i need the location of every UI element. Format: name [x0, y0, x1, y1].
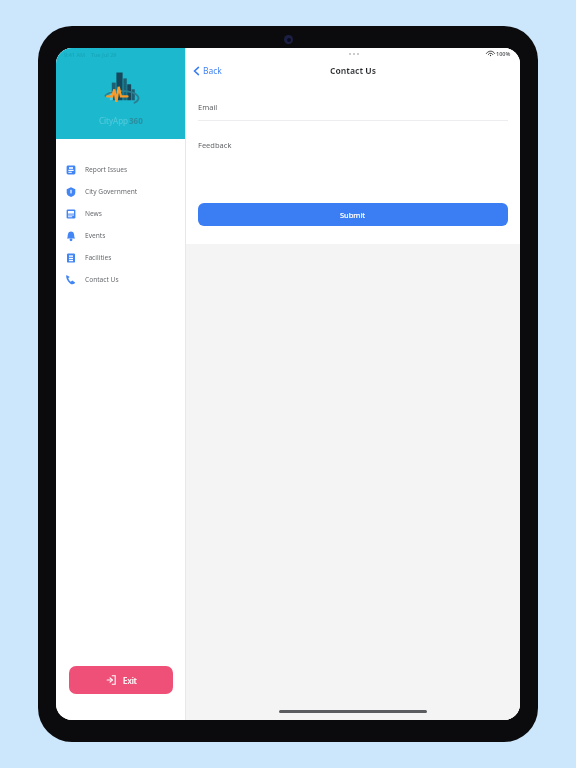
- staticText: Feedback: [198, 140, 232, 150]
- staticText: Submit: [340, 210, 366, 220]
- staticText: Facilities: [85, 253, 112, 262]
- staticText: 100%: [496, 50, 511, 57]
- button[interactable]: Events: [56, 224, 186, 246]
- staticText: Contact Us: [330, 65, 377, 77]
- staticText: 360: [129, 115, 143, 126]
- staticText: Email: [198, 102, 218, 112]
- button[interactable]: City Government: [56, 180, 186, 202]
- button[interactable]: Back: [186, 62, 228, 80]
- staticText: Events: [85, 231, 106, 240]
- button[interactable]: News: [56, 202, 186, 224]
- staticText: CityApp: [99, 115, 129, 126]
- button[interactable]: Facilities: [56, 246, 186, 268]
- button[interactable]: Report Issues: [56, 158, 186, 180]
- staticText: Tue Jul 29: [91, 51, 117, 58]
- staticText: News: [85, 209, 102, 218]
- staticText: 9:41 AM: [64, 51, 86, 58]
- button[interactable]: Exit: [69, 666, 173, 694]
- staticText: Contact Us: [85, 275, 119, 284]
- staticText: Back: [203, 65, 222, 77]
- button[interactable]: Contact Us: [56, 268, 186, 290]
- button[interactable]: Submit: [198, 203, 508, 226]
- staticText: Report Issues: [85, 165, 128, 174]
- staticText: City Government: [85, 187, 138, 196]
- staticText: Exit: [123, 675, 137, 686]
